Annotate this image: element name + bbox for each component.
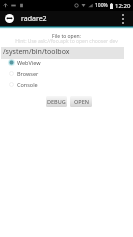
button[interactable]: WebView	[6, 57, 66, 68]
button[interactable]: radare2	[5, 11, 47, 26]
button[interactable]: Console	[6, 79, 66, 90]
staticText: Console	[17, 81, 38, 88]
staticText: File to open:	[0, 33, 133, 40]
button[interactable]: OPEN	[70, 96, 92, 107]
staticText: WebView	[17, 59, 41, 66]
button[interactable]: File path field	[1, 47, 124, 59]
staticText: Hint: Use ask://foo.apk to open chooser …	[0, 38, 133, 45]
staticText: 12:20	[115, 2, 131, 10]
staticText: OPEN	[74, 98, 89, 105]
button[interactable]: More options	[117, 11, 128, 26]
staticText: 100%	[95, 2, 108, 9]
staticText: DEBUG	[47, 98, 66, 105]
staticText: radare2	[21, 14, 47, 24]
staticText: /system/bin/toolbox	[3, 47, 70, 57]
button[interactable]: DEBUG	[46, 96, 67, 107]
button[interactable]: Browser	[6, 68, 66, 79]
staticText: Browser	[17, 70, 39, 77]
